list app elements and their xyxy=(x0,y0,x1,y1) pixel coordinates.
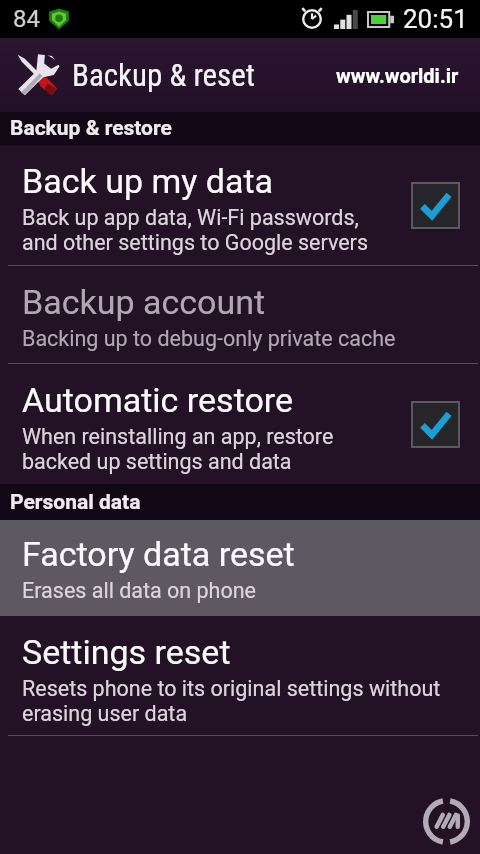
staticText: Backup & restore xyxy=(10,116,172,141)
staticText: Back up my data xyxy=(22,161,274,201)
button[interactable]: Factory data reset xyxy=(0,520,480,616)
staticText: Factory data reset xyxy=(22,534,295,574)
button[interactable]: Backup account xyxy=(0,266,480,363)
staticText: Personal data xyxy=(10,490,141,515)
staticText: www.worldi.ir xyxy=(336,64,459,87)
staticText: Backup account xyxy=(22,282,266,322)
staticText: Automatic restore xyxy=(22,380,294,420)
staticText: Backing up to debug-only private cache xyxy=(22,326,442,351)
staticText: Back up app data, Wi-Fi passwords, and o… xyxy=(22,205,442,255)
button[interactable]: Back up my data xyxy=(0,145,480,265)
button[interactable]: Settings reset xyxy=(0,616,480,735)
staticText: 20:51 xyxy=(403,4,468,34)
staticText: Settings reset xyxy=(22,632,231,672)
staticText: Resets phone to its original settings wi… xyxy=(22,676,472,726)
button[interactable]: Automatic restore xyxy=(0,364,480,484)
staticText: Backup & reset xyxy=(72,57,255,93)
staticText: Erases all data on phone xyxy=(22,578,442,603)
other: Toggle backup xyxy=(413,403,458,446)
other: Toggle backup xyxy=(413,184,458,227)
staticText: When reinstalling an app, restore backed… xyxy=(22,424,442,474)
staticText: 84 xyxy=(13,5,40,33)
